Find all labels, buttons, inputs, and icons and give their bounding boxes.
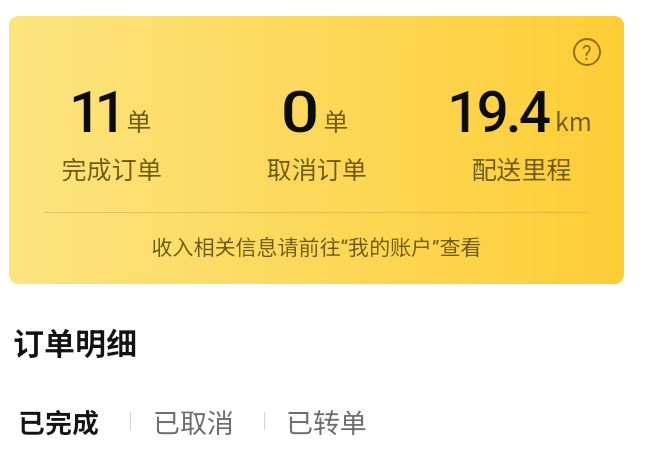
staticText: 已完成 xyxy=(18,402,99,440)
staticText: km xyxy=(555,102,592,138)
button[interactable]: 已取消 xyxy=(153,402,234,440)
staticText: 收入相关信息请前往“我的账户”查看 xyxy=(9,231,624,261)
button[interactable]: 11 xyxy=(9,79,214,189)
staticText: 订单明细 xyxy=(13,319,137,364)
staticText: 已转单 xyxy=(286,402,367,440)
staticText: 完成订单 xyxy=(9,150,214,186)
staticText: 11 xyxy=(69,79,120,146)
button[interactable]: 19.4 xyxy=(419,79,624,189)
button[interactable]: 已转单 xyxy=(286,402,367,440)
staticText: 取消订单 xyxy=(214,150,419,186)
button[interactable]: 已完成 xyxy=(18,402,99,440)
button[interactable]: 0 xyxy=(214,79,419,189)
staticText: 单 xyxy=(126,102,152,138)
staticText: 0 xyxy=(281,79,320,146)
staticText: 单 xyxy=(323,102,349,138)
staticText: ? xyxy=(582,41,592,64)
button[interactable]: Help about earnings xyxy=(567,32,607,72)
button[interactable]: 收入相关信息请前往“我的账户”查看 xyxy=(9,226,624,260)
staticText: 配送里程 xyxy=(419,150,624,186)
staticText: 19.4 xyxy=(447,79,549,146)
staticText: 已取消 xyxy=(153,402,234,440)
